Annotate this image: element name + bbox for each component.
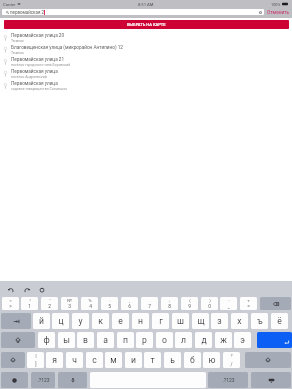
button[interactable]: Благовещенская улица (микрорайон Антипин… [0, 44, 292, 56]
button[interactable]: е [112, 313, 129, 329]
button[interactable]: щ [192, 313, 209, 329]
button[interactable]: д [195, 332, 212, 348]
button[interactable]: б [184, 352, 201, 368]
button[interactable]: Первомайская улица [0, 68, 292, 80]
button[interactable]: и [125, 352, 142, 368]
staticText: 6 [128, 303, 131, 309]
button[interactable]: Return [257, 332, 292, 348]
button[interactable]: Tab [1, 313, 31, 329]
staticText: ь [170, 355, 175, 365]
button[interactable]: ч [66, 352, 83, 368]
button[interactable]: , [121, 297, 138, 310]
button[interactable]: м [105, 352, 122, 368]
button[interactable]: ? [223, 352, 240, 368]
button[interactable]: .?123 [31, 372, 55, 388]
button[interactable]: № [61, 297, 78, 310]
button[interactable]: ( [181, 297, 198, 310]
button[interactable]: Undo [7, 286, 15, 294]
button[interactable]: в [77, 332, 94, 348]
button[interactable]: с [86, 352, 103, 368]
button[interactable]: х [231, 313, 248, 329]
staticText: у [78, 316, 83, 326]
button[interactable]: й [33, 313, 50, 329]
button[interactable]: к [92, 313, 109, 329]
button[interactable]: ц [52, 313, 69, 329]
button[interactable]: у [72, 313, 89, 329]
staticText: 2 [48, 303, 51, 309]
button[interactable]: Backspace [260, 297, 291, 310]
button[interactable]: " [41, 297, 58, 310]
button[interactable]: ъ [251, 313, 268, 329]
button[interactable]: ш [172, 313, 189, 329]
staticText: 3 [68, 303, 71, 309]
button[interactable]: первомайская 2 [2, 9, 264, 15]
button[interactable]: г [152, 313, 169, 329]
button[interactable]: - [220, 297, 237, 310]
button[interactable]: Dictate [58, 372, 87, 388]
staticText: ю [208, 355, 216, 365]
button[interactable]: з [211, 313, 228, 329]
staticText: п [123, 335, 128, 345]
staticText: к [98, 316, 103, 326]
staticText: ? [230, 353, 233, 358]
button[interactable]: < [2, 297, 19, 310]
button[interactable]: ю [203, 352, 220, 368]
button[interactable]: Отменить [267, 9, 290, 16]
button[interactable]: ф [38, 332, 55, 348]
staticText: , [129, 298, 130, 303]
button[interactable]: о [156, 332, 173, 348]
button[interactable]: ж [215, 332, 232, 348]
button[interactable]: ё [271, 313, 288, 329]
button[interactable]: п [117, 332, 134, 348]
staticText: е [118, 316, 123, 326]
staticText: 100% [271, 2, 281, 7]
button[interactable]: .?123 [208, 372, 248, 388]
staticText: ё [277, 316, 282, 326]
staticText: _ [227, 303, 230, 309]
staticText: . [149, 298, 151, 303]
button[interactable]: Paste [38, 286, 46, 294]
button[interactable]: ; [161, 297, 178, 310]
staticText: 7 [148, 303, 151, 309]
button[interactable]: Emoji [1, 372, 28, 388]
button[interactable]: Первомайская улица 21 [0, 56, 292, 68]
button[interactable]: + [240, 297, 257, 310]
button[interactable]: ВЫБРАТЬ НА КАРТЕ [4, 20, 289, 29]
button[interactable]: э [234, 332, 251, 348]
staticText: 5 [108, 303, 111, 309]
staticText: ш [177, 316, 184, 326]
staticText: э [240, 335, 245, 345]
button[interactable]: Caps lock [1, 332, 35, 348]
staticText: [ [35, 353, 37, 358]
button[interactable]: % [81, 297, 98, 310]
staticText: м [110, 355, 117, 365]
button[interactable]: [ [27, 352, 44, 368]
staticText: а [103, 335, 108, 345]
button[interactable]: Первомайская улица [0, 80, 292, 92]
staticText: т [150, 355, 155, 365]
button[interactable]: я [46, 352, 63, 368]
button[interactable]: Redo [23, 286, 31, 294]
button[interactable]: т [144, 352, 161, 368]
staticText: д [201, 335, 207, 345]
button[interactable]: ! [21, 297, 38, 310]
button[interactable]: ) [201, 297, 218, 310]
button[interactable]: н [132, 313, 149, 329]
button[interactable]: : [101, 297, 118, 310]
button[interactable]: л [175, 332, 192, 348]
staticText: Carrier [3, 2, 16, 7]
button[interactable]: Shift [245, 352, 291, 368]
button[interactable]: Clear text [259, 11, 262, 14]
staticText: " [49, 298, 51, 303]
button[interactable]: Shift [1, 352, 25, 368]
button[interactable]: . [141, 297, 158, 310]
staticText: .?123 [222, 377, 235, 383]
button[interactable]: а [97, 332, 114, 348]
button[interactable]: Первомайская улица 20 [0, 32, 292, 44]
button[interactable]: ы [58, 332, 75, 348]
button[interactable]: Hide keyboard [251, 372, 291, 388]
staticText: .?123 [37, 377, 50, 383]
button[interactable]: р [136, 332, 153, 348]
button[interactable]: ь [164, 352, 181, 368]
